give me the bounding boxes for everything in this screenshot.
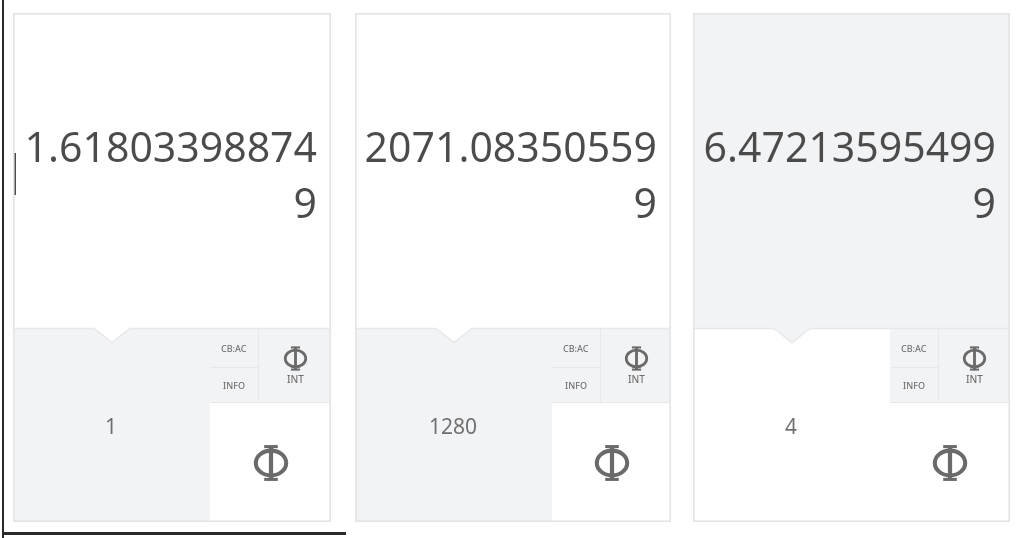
staticText: 2071.083505599 xyxy=(355,118,657,230)
staticText: 1 xyxy=(105,412,118,441)
button[interactable]: 1 xyxy=(13,328,210,522)
staticText: INT xyxy=(287,372,304,386)
button[interactable]: INFO xyxy=(552,368,600,402)
button[interactable]: CB:AC xyxy=(210,328,258,367)
button[interactable]: Phi xyxy=(210,403,331,522)
button[interactable]: 1.618033988749 xyxy=(13,13,331,328)
button[interactable]: 2071.083505599 xyxy=(355,13,671,328)
staticText: 1280 xyxy=(429,412,478,441)
button[interactable]: Phi xyxy=(552,403,671,522)
staticText: INFO xyxy=(903,379,925,391)
staticText: 6.472135954999 xyxy=(693,118,996,230)
staticText: INFO xyxy=(565,379,587,391)
button[interactable]: 6.472135954999 xyxy=(693,13,1010,328)
button[interactable]: INFO xyxy=(210,368,258,402)
button[interactable]: INFO xyxy=(890,368,938,402)
staticText: INFO xyxy=(223,379,245,391)
button[interactable]: CB:AC xyxy=(552,328,600,367)
button[interactable]: 1280 xyxy=(355,328,552,522)
staticText: INT xyxy=(628,372,645,386)
staticText: 1.618033988749 xyxy=(17,118,317,230)
staticText: CB:AC xyxy=(563,342,589,354)
staticText: 4 xyxy=(785,412,798,441)
staticText: CB:AC xyxy=(221,342,247,354)
staticText: INT xyxy=(966,372,983,386)
button[interactable]: 4 xyxy=(693,328,890,522)
button[interactable]: Integer phi xyxy=(259,328,331,402)
button[interactable]: Phi xyxy=(890,403,1010,522)
button[interactable]: Integer phi xyxy=(601,328,671,402)
button[interactable]: CB:AC xyxy=(890,328,938,367)
staticText: CB:AC xyxy=(901,342,927,354)
button[interactable]: Integer phi xyxy=(939,328,1010,402)
